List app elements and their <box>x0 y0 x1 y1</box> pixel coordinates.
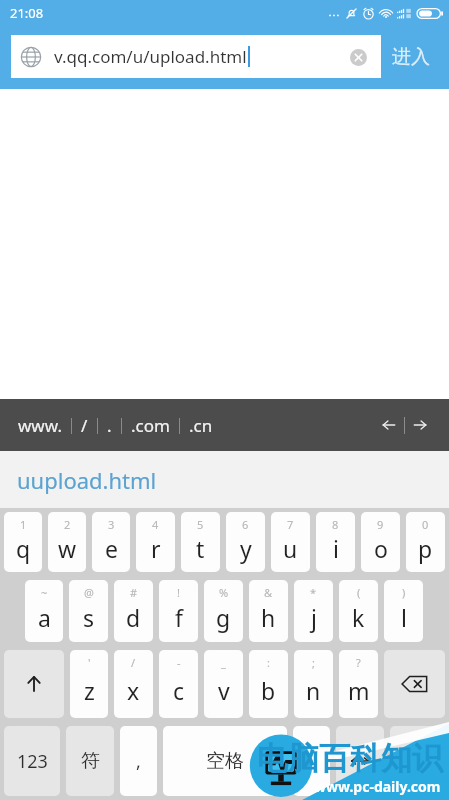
button[interactable]: 0 <box>406 512 445 572</box>
staticText: www. <box>18 414 62 437</box>
staticText: 21:08 <box>10 4 44 22</box>
button[interactable]: www. <box>9 408 71 443</box>
button[interactable]: Symbols <box>336 726 384 796</box>
staticText: / <box>81 414 88 437</box>
button[interactable]: - <box>159 650 198 718</box>
staticText: f <box>175 602 183 633</box>
staticText: e <box>105 533 118 564</box>
button[interactable]: 空格 <box>163 726 287 796</box>
staticText: / <box>131 655 136 670</box>
staticText: * <box>310 585 317 600</box>
staticText: .com <box>131 414 170 437</box>
button[interactable]: 5 <box>181 512 220 572</box>
staticText: k <box>352 602 365 633</box>
button[interactable]: 1 <box>4 512 42 572</box>
button[interactable]: Backspace <box>384 650 445 718</box>
button[interactable]: / <box>114 650 153 718</box>
button[interactable]: Website <box>11 35 381 78</box>
button[interactable]: 2 <box>48 512 86 572</box>
button[interactable]: ~ <box>25 580 63 642</box>
staticText: z <box>84 675 95 706</box>
staticText: m <box>348 675 370 706</box>
staticText: w <box>58 533 77 564</box>
button[interactable]: 6 <box>226 512 265 572</box>
button[interactable]: 进入 <box>381 35 441 78</box>
button[interactable]: 符 <box>66 726 114 796</box>
staticText: 3 <box>108 517 115 532</box>
staticText: 1 <box>20 517 27 532</box>
button[interactable]: 。 <box>293 726 330 796</box>
staticText: 123 <box>17 749 48 774</box>
staticText: q <box>16 533 31 564</box>
staticText: 8 <box>332 517 339 532</box>
staticText: ( <box>357 585 361 600</box>
staticText: ~ <box>41 585 48 600</box>
button[interactable]: @ <box>69 580 108 642</box>
staticText: 电脑百科知识 <box>257 739 443 778</box>
staticText: o <box>374 533 388 564</box>
button[interactable]: # <box>114 580 153 642</box>
button[interactable]: _ <box>204 650 243 718</box>
other: Website <box>20 46 42 68</box>
button[interactable]: ) <box>384 580 423 642</box>
staticText: h <box>261 602 276 633</box>
button[interactable]: Previous <box>374 410 404 440</box>
button[interactable]: ' <box>70 650 108 718</box>
staticText: , <box>136 749 141 774</box>
staticText: ; <box>312 655 315 670</box>
button[interactable]: * <box>294 580 333 642</box>
staticText: ! <box>177 585 180 600</box>
staticText: p <box>418 533 433 564</box>
staticText: g <box>216 602 231 633</box>
button[interactable]: ? <box>339 650 378 718</box>
staticText: 5 <box>197 517 204 532</box>
button[interactable]: % <box>204 580 243 642</box>
staticText: ) <box>402 585 406 600</box>
staticText: 2 <box>64 517 71 532</box>
button[interactable]: Enter <box>390 726 445 796</box>
staticText: 符 <box>81 749 100 773</box>
button[interactable]: : <box>249 650 288 718</box>
staticText: : <box>267 655 270 670</box>
staticText: 9 <box>377 517 384 532</box>
staticText: a <box>38 602 51 633</box>
button[interactable]: 8 <box>316 512 355 572</box>
button[interactable]: Next <box>405 410 435 440</box>
staticText: @ <box>84 585 94 600</box>
staticText: 7 <box>287 517 294 532</box>
button[interactable]: ( <box>339 580 378 642</box>
staticText: c <box>173 675 185 706</box>
staticText: . <box>107 414 112 437</box>
button[interactable]: , <box>120 726 157 796</box>
button[interactable]: uupload.html <box>0 451 449 508</box>
staticText: i <box>333 533 339 564</box>
button[interactable]: ! <box>159 580 198 642</box>
button[interactable]: 123 <box>4 726 60 796</box>
staticText: & <box>264 585 273 600</box>
staticText: v <box>218 675 230 706</box>
button[interactable]: Clear <box>344 43 372 71</box>
button[interactable]: .cn <box>180 408 222 443</box>
button[interactable]: 7 <box>271 512 310 572</box>
staticText: y <box>240 533 252 564</box>
staticText: ' <box>88 655 91 670</box>
button[interactable]: ; <box>294 650 333 718</box>
button[interactable]: .com <box>122 408 179 443</box>
button[interactable]: 4 <box>136 512 175 572</box>
staticText: v.qq.com/u/upload.html <box>54 45 247 68</box>
staticText: _ <box>221 655 226 670</box>
staticText: 6 <box>242 517 249 532</box>
staticText: j <box>311 602 317 633</box>
staticText: l <box>401 602 407 633</box>
staticText: 4 <box>152 517 159 532</box>
staticText: d <box>126 602 141 633</box>
button[interactable]: 3 <box>92 512 130 572</box>
button[interactable]: / <box>72 408 97 443</box>
staticText: 空格 <box>206 749 244 773</box>
button[interactable]: . <box>98 408 121 443</box>
button[interactable]: Shift <box>4 650 64 718</box>
staticText: www.pc-daily.com <box>314 777 441 796</box>
button[interactable]: & <box>249 580 288 642</box>
button[interactable]: 9 <box>361 512 400 572</box>
staticText: ? <box>356 655 361 670</box>
